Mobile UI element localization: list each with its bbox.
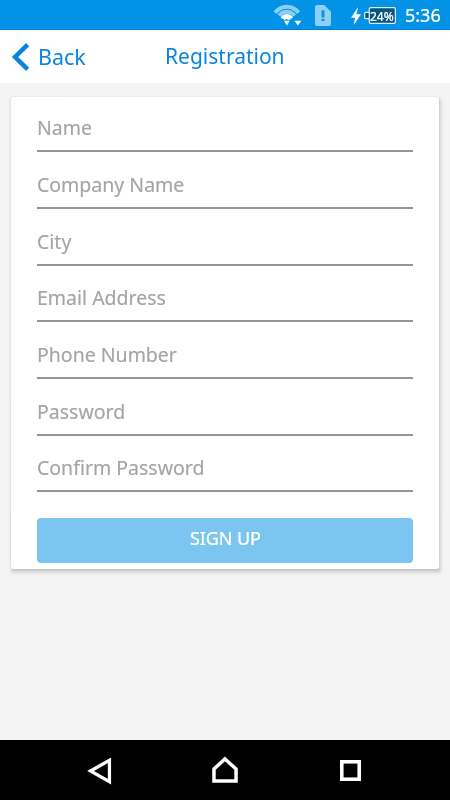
staticText: Registration [165,42,285,71]
button[interactable]: Back [66,740,134,800]
staticText: Phone Number [37,341,177,368]
button[interactable]: Confirm Password [11,436,439,492]
staticText: 5:36 [405,3,441,28]
button[interactable]: Phone Number [11,322,439,379]
button[interactable]: Back [0,30,100,83]
button[interactable]: Email Address [11,266,439,322]
button[interactable]: SIGN UP [37,518,413,563]
staticText: 24% [370,8,394,24]
staticText: Name [37,114,92,141]
staticText: SIGN UP [190,526,261,551]
staticText: Company Name [37,171,185,198]
staticText: City [37,228,72,255]
staticText: Password [37,398,126,425]
button[interactable]: Password [11,379,439,436]
staticText: Confirm Password [37,454,205,481]
button[interactable]: Recent apps [316,740,384,800]
staticText: Email Address [37,284,166,311]
button[interactable]: Name [11,97,439,152]
button[interactable]: City [11,209,439,266]
button[interactable]: Home [191,740,259,800]
button[interactable]: Company Name [11,152,439,209]
staticText: Back [38,42,86,71]
